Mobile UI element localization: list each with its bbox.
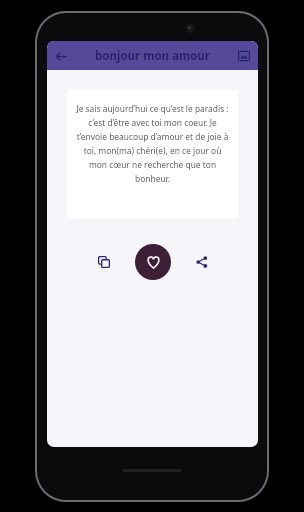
button[interactable]: Back: [49, 44, 73, 68]
button[interactable]: Je sais aujourd’hui ce qu’est le paradis…: [67, 90, 238, 218]
staticText: bonjour mon amour: [95, 48, 210, 64]
button[interactable]: Favorite: [135, 244, 171, 280]
button[interactable]: Copy: [89, 247, 119, 277]
button[interactable]: Image: [233, 45, 255, 67]
staticText: Je sais aujourd’hui ce qu’est le paradis…: [76, 103, 229, 184]
button[interactable]: Share: [187, 247, 217, 277]
